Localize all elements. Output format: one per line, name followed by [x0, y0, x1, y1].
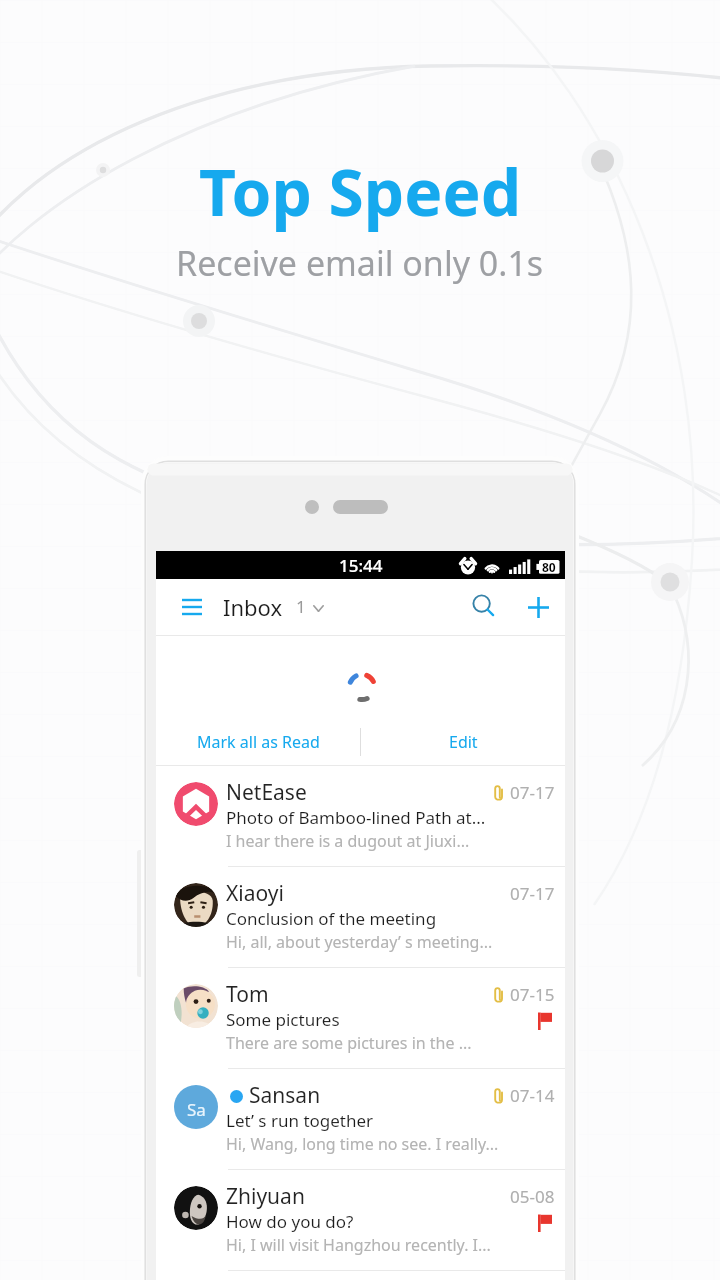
staticText: 05-08 — [510, 1185, 555, 1208]
staticText: Zhiyuan — [226, 1182, 305, 1211]
staticText: 80 — [542, 559, 556, 575]
button[interactable]: Edit — [361, 717, 565, 767]
staticText: Sa — [187, 1098, 206, 1121]
button[interactable]: 1 — [296, 591, 324, 622]
staticText: Hi, Wang, long time no see. I really... — [226, 1133, 499, 1155]
staticText: 07-15 — [510, 983, 555, 1006]
staticText: Some pictures — [226, 1008, 340, 1031]
staticText: 07-17 — [510, 781, 555, 804]
staticText: Let’ s run together — [226, 1109, 374, 1132]
staticText: Inbox — [223, 592, 283, 622]
button[interactable]: Zhiyuan — [156, 1170, 565, 1270]
button[interactable]: Tom — [156, 968, 565, 1068]
button[interactable]: Search — [461, 583, 507, 629]
staticText: I hear there is a dugout at Jiuxi... — [226, 830, 470, 852]
button[interactable]: Mark all as Read — [156, 717, 360, 767]
staticText: Edit — [449, 731, 478, 753]
staticText: 15:44 — [339, 554, 383, 577]
staticText: Conclusion of the meeting — [226, 907, 437, 930]
staticText: Receive email only 0.1s — [176, 240, 544, 286]
button[interactable]: NetEase — [156, 766, 565, 866]
staticText: Photo of Bamboo-lined Path at... — [226, 806, 486, 829]
staticText: How do you do? — [226, 1210, 354, 1233]
staticText: Tom — [226, 980, 269, 1009]
staticText: Sansan — [249, 1081, 321, 1110]
staticText: Hi, all, about yesterday’ s meeting... — [226, 931, 493, 953]
staticText: Top Speed — [199, 148, 522, 235]
staticText: Mark all as Read — [197, 731, 320, 753]
staticText: NetEase — [226, 778, 307, 807]
staticText: Hi, I will visit Hangzhou recently. I... — [226, 1234, 491, 1256]
button[interactable]: Menu — [172, 587, 212, 627]
button[interactable]: Compose — [515, 584, 561, 630]
staticText: 07-17 — [510, 882, 555, 905]
button[interactable]: Sa — [156, 1069, 565, 1169]
staticText: Xiaoyi — [226, 879, 284, 908]
staticText: 07-14 — [510, 1084, 555, 1107]
staticText: There are some pictures in the ... — [226, 1032, 472, 1054]
staticText: 1 — [296, 595, 306, 618]
button[interactable]: Xiaoyi — [156, 867, 565, 967]
